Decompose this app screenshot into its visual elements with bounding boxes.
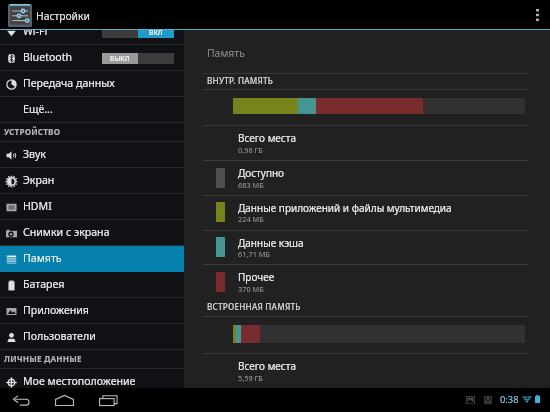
button[interactable]: Всего места bbox=[184, 353, 550, 388]
staticText: Данные приложений и файлы мультимедиа bbox=[238, 201, 452, 215]
button[interactable]: Главный экран bbox=[49, 388, 80, 412]
button[interactable]: Недавние приложения bbox=[93, 388, 123, 412]
button[interactable]: Wi-Fi bbox=[0, 19, 184, 45]
staticText: 370 МБ bbox=[238, 284, 264, 294]
button[interactable]: Передача данных bbox=[0, 71, 184, 97]
staticText: УСТРОЙСТВО bbox=[4, 126, 61, 137]
staticText: 5,59 ГБ bbox=[238, 373, 263, 383]
button[interactable]: ВЫКЛ bbox=[102, 53, 174, 64]
staticText: ЛИЧНЫЕ ДАННЫЕ bbox=[4, 353, 82, 364]
button[interactable]: Память bbox=[0, 246, 184, 272]
button[interactable]: Bluetooth bbox=[0, 45, 184, 71]
button[interactable]: Приложения bbox=[0, 298, 184, 324]
staticText: 0,98 ГБ bbox=[238, 145, 263, 155]
staticText: ВНУТР. ПАМЯТЬ bbox=[207, 75, 274, 86]
staticText: 61,71 МБ bbox=[238, 249, 271, 259]
button[interactable]: Доступно bbox=[184, 160, 550, 195]
staticText: Wi-Fi bbox=[23, 24, 48, 38]
button[interactable]: Назад bbox=[7, 388, 36, 412]
staticText: Прочее bbox=[238, 270, 275, 284]
staticText: Всего места bbox=[238, 359, 296, 373]
staticText: HDMI bbox=[23, 199, 52, 213]
staticText: Доступно bbox=[238, 166, 285, 180]
button[interactable]: More options bbox=[524, 0, 550, 30]
button[interactable]: Пользователи bbox=[0, 324, 184, 350]
staticText: 224 МБ bbox=[238, 214, 264, 224]
staticText: 0:38 bbox=[500, 393, 519, 406]
staticText: Память bbox=[207, 46, 245, 60]
button[interactable]: Данные кэша bbox=[184, 230, 550, 265]
staticText: Снимки с экрана bbox=[23, 225, 110, 239]
staticText: Экран bbox=[23, 173, 55, 187]
button[interactable]: Настройки bbox=[4, 0, 98, 30]
button[interactable]: ВКЛ bbox=[102, 27, 174, 38]
button[interactable]: Данные приложений и файлы мультимедиа bbox=[184, 195, 550, 230]
staticText: Настройки bbox=[36, 9, 90, 23]
staticText: ВСТРОЕННАЯ ПАМЯТЬ bbox=[207, 301, 301, 312]
staticText: Пользователи bbox=[23, 329, 96, 343]
staticText: Приложения bbox=[23, 303, 89, 317]
button[interactable]: HDMI bbox=[0, 194, 184, 220]
staticText: Мое местоположение bbox=[23, 374, 136, 388]
button[interactable]: Ещё... bbox=[0, 97, 184, 123]
staticText: Передача данных bbox=[23, 76, 115, 90]
staticText: Ещё... bbox=[23, 102, 53, 116]
button[interactable]: Экран bbox=[0, 168, 184, 194]
button[interactable]: Прочее bbox=[184, 264, 550, 299]
staticText: Память bbox=[23, 251, 62, 265]
staticText: 683 МБ bbox=[238, 180, 264, 190]
button[interactable]: Звук bbox=[0, 142, 184, 168]
staticText: Всего места bbox=[238, 131, 296, 145]
button[interactable]: Всего места bbox=[184, 125, 550, 160]
staticText: ВЫКЛ bbox=[110, 54, 130, 63]
staticText: Звук bbox=[23, 147, 46, 161]
staticText: Bluetooth bbox=[23, 50, 73, 64]
staticText: Данные кэша bbox=[238, 236, 304, 250]
staticText: Батарея bbox=[23, 277, 65, 291]
button[interactable]: Батарея bbox=[0, 272, 184, 298]
button[interactable]: Снимки с экрана bbox=[0, 220, 184, 246]
button[interactable]: Мое местоположение bbox=[0, 369, 184, 388]
staticText: ВКЛ bbox=[149, 28, 163, 37]
